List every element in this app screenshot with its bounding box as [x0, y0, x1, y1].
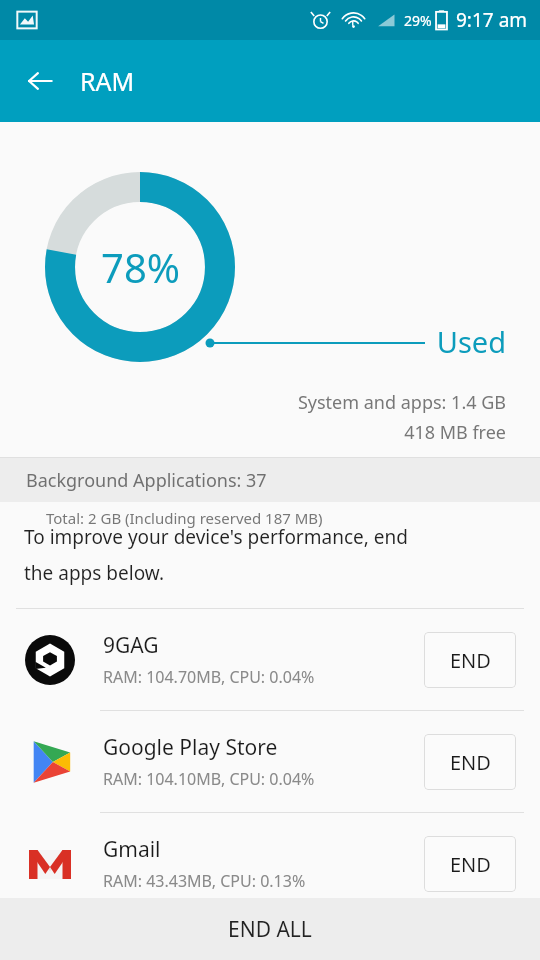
staticText: RAM: 104.10MB, CPU: 0.04%	[103, 768, 315, 790]
staticText: END	[450, 647, 491, 674]
staticText: 29%	[404, 11, 432, 30]
button[interactable]: END	[424, 632, 516, 688]
staticText: 9GAG	[103, 631, 159, 660]
button[interactable]: Back	[14, 55, 66, 107]
staticText: END	[450, 749, 491, 776]
staticText: Background Applications: 37	[26, 468, 267, 493]
staticText: RAM: 104.70MB, CPU: 0.04%	[103, 666, 315, 688]
staticText: RAM	[80, 64, 135, 98]
staticText: Used	[0, 322, 506, 361]
staticText: To improve your device's performance, en…	[24, 524, 408, 550]
button[interactable]: END	[424, 734, 516, 790]
button[interactable]: END	[424, 836, 516, 892]
button[interactable]: Google Play Store	[0, 711, 540, 812]
staticText: System and apps: 1.4 GB	[0, 390, 506, 415]
staticText: END ALL	[228, 915, 312, 944]
staticText: END	[450, 851, 491, 878]
button[interactable]: 9GAG	[0, 609, 540, 710]
staticText: 78%	[101, 240, 180, 294]
staticText: Google Play Store	[103, 733, 278, 762]
staticText: 418 MB free	[0, 420, 506, 445]
staticText: 9:17 am	[456, 7, 528, 33]
staticText: Total: 2 GB (Including reserved 187 MB)	[46, 508, 323, 528]
staticText: the apps below.	[24, 560, 165, 586]
button[interactable]: Gmail	[0, 813, 540, 914]
staticText: Gmail	[103, 835, 161, 864]
button[interactable]: END ALL	[0, 898, 540, 960]
staticText: RAM: 43.43MB, CPU: 0.13%	[103, 870, 306, 892]
